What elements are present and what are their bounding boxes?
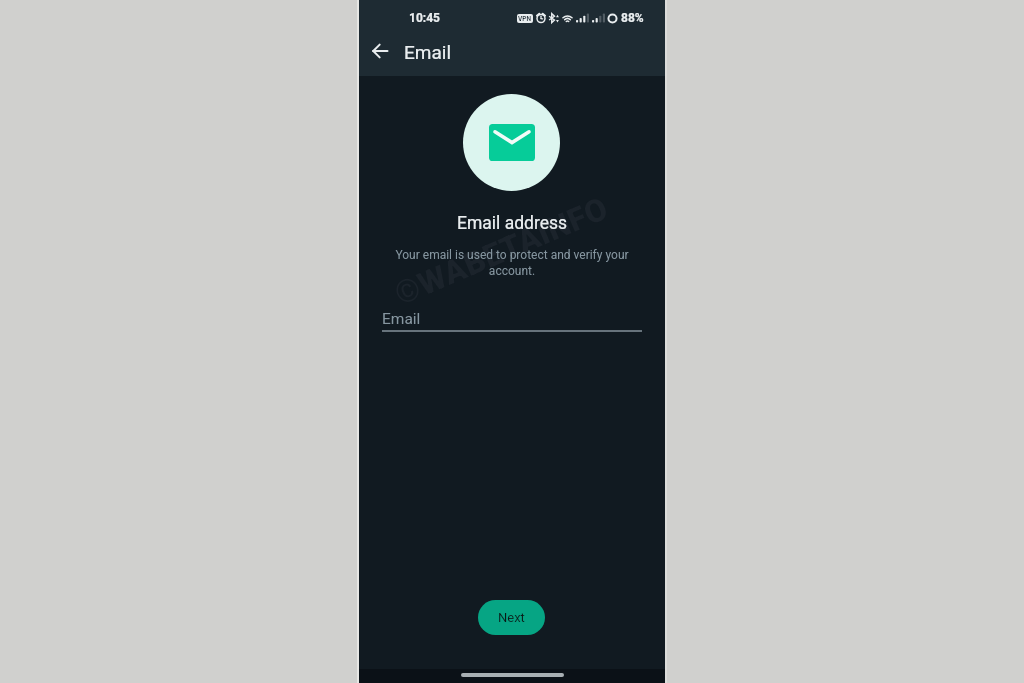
staticText: 10:45: [409, 11, 440, 25]
staticText: Your email is used to protect and verify…: [382, 248, 642, 278]
button[interactable]: Next: [478, 600, 545, 635]
staticText: VPN: [518, 15, 532, 23]
staticText: 88%: [621, 11, 644, 25]
button[interactable]: Email: [382, 310, 642, 332]
staticText: Email: [382, 310, 421, 328]
staticText: ©WABETAINFO: [389, 189, 614, 313]
staticText: Next: [498, 610, 525, 625]
staticText: Email address: [457, 213, 568, 234]
staticText: Email: [404, 41, 452, 63]
button[interactable]: Back: [362, 34, 398, 70]
